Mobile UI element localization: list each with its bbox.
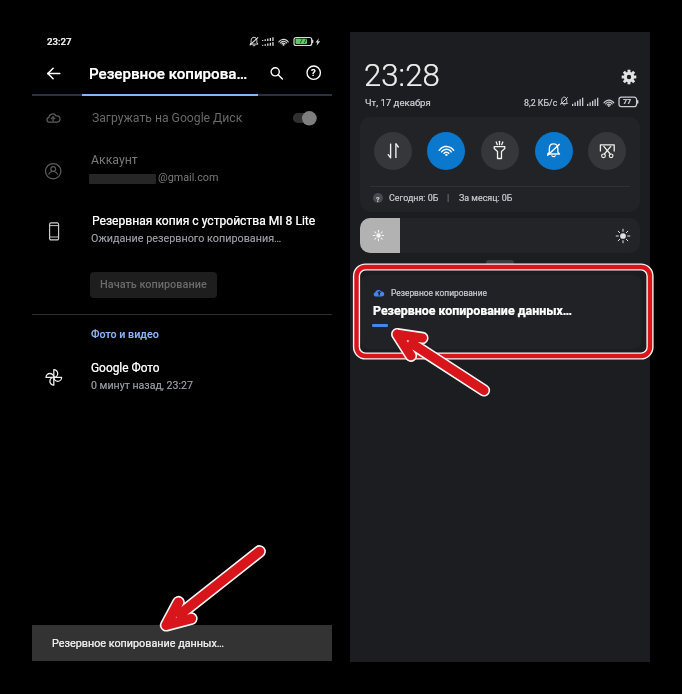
button[interactable]: Back (38, 58, 70, 89)
staticText: Google Фото (91, 361, 160, 375)
staticText: Резервное копирование данных… (52, 637, 224, 650)
staticText: ? (311, 67, 316, 78)
button[interactable]: Google Photos (0, 356, 341, 398)
button[interactable]: Do not disturb (535, 132, 573, 170)
staticText: 23:27 (47, 36, 72, 47)
button[interactable]: Settings (619, 67, 639, 87)
staticText: За месяц: 0Б (459, 193, 513, 203)
button[interactable]: Screenshot (588, 132, 626, 170)
button[interactable]: Начать копирование (90, 272, 217, 298)
staticText: 8,2 КБ/с (524, 98, 558, 108)
staticText: Фото и видео (91, 328, 159, 341)
staticText: Начать копирование (100, 278, 207, 291)
button[interactable]: Резервное копирование данных (32, 625, 332, 661)
staticText: Резервное копирование (391, 288, 487, 298)
staticText: Аккаунт (91, 153, 138, 167)
button[interactable]: Help (299, 58, 328, 89)
staticText: Резервное копирование данных… (373, 303, 572, 318)
button[interactable]: Резервное копирование данных (360, 275, 642, 349)
button[interactable]: Search (261, 58, 290, 89)
staticText: Чт, 17 декабря (365, 97, 431, 108)
button[interactable]: Flashlight (481, 132, 519, 170)
staticText: | (447, 193, 450, 203)
staticText: 77 (299, 36, 308, 44)
staticText: Резервное копирова… (89, 65, 248, 83)
staticText: Резервная копия с устройства MI 8 Lite (92, 214, 316, 228)
staticText: 0 минут назад, 23:27 (91, 379, 193, 391)
staticText: 77 (623, 97, 632, 105)
button[interactable]: Mobile data (374, 132, 412, 170)
staticText: ? (376, 195, 380, 203)
button[interactable]: Device backup (0, 206, 341, 250)
staticText: @gmail.com (158, 171, 219, 184)
staticText: Ожидание резервного копирования… (91, 232, 282, 245)
staticText: Загружать на Google Диск (92, 111, 243, 125)
button[interactable]: Wi-Fi (427, 132, 465, 170)
button[interactable]: Account (0, 148, 341, 192)
staticText: Сегодня: 0Б (389, 193, 439, 203)
button[interactable]: Upload to Google Drive (0, 101, 341, 136)
staticText: 23:28 (364, 57, 440, 94)
button[interactable]: Brightness (360, 218, 640, 253)
